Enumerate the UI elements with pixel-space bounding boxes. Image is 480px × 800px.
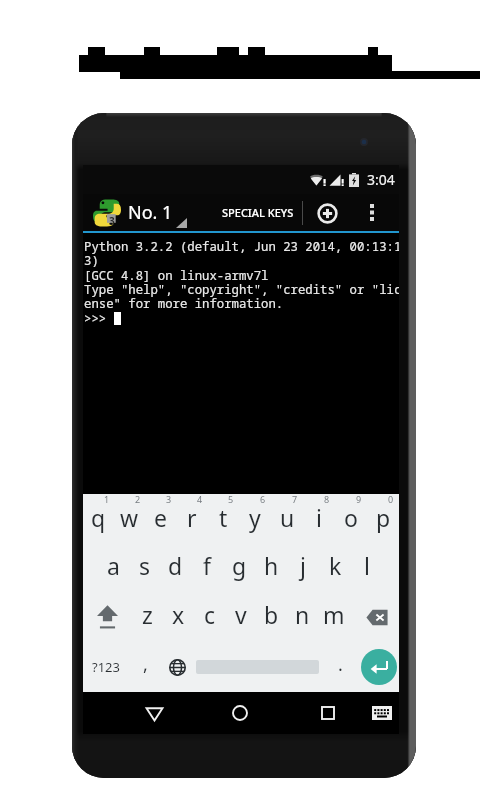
- button[interactable]: 1: [83, 494, 114, 543]
- staticText: h: [264, 550, 279, 581]
- staticText: l: [364, 550, 370, 581]
- staticText: r: [187, 502, 197, 533]
- staticText: 5: [228, 493, 234, 505]
- button[interactable]: Home: [217, 692, 263, 734]
- button[interactable]: 8: [303, 494, 335, 543]
- button[interactable]: s: [129, 543, 160, 592]
- button[interactable]: 9: [335, 494, 367, 543]
- button[interactable]: n: [287, 592, 318, 642]
- button[interactable]: 2: [114, 494, 145, 543]
- staticText: w: [120, 502, 139, 533]
- button[interactable]: 6: [239, 494, 271, 543]
- staticText: t: [219, 502, 228, 533]
- button[interactable]: Back: [131, 692, 177, 734]
- staticText: [GCC 4.8] on linux-armv7l: [84, 267, 269, 284]
- staticText: p: [376, 502, 391, 533]
- button[interactable]: 3: [83, 194, 189, 231]
- button[interactable]: 4: [176, 494, 207, 543]
- staticText: i: [316, 502, 322, 533]
- button[interactable]: c: [194, 592, 225, 642]
- staticText: 9: [356, 493, 362, 505]
- button[interactable]: Enter: [358, 642, 399, 692]
- button[interactable]: f: [191, 543, 223, 592]
- button[interactable]: Recents: [305, 692, 351, 734]
- staticText: 8: [324, 493, 330, 505]
- button[interactable]: ?123: [83, 642, 129, 692]
- staticText: n: [295, 599, 310, 630]
- staticText: u: [280, 502, 295, 533]
- staticText: Python 3.2.2 (default, Jun 23 2014, 00:1…: [84, 238, 399, 255]
- staticText: a: [107, 550, 120, 581]
- button[interactable]: z: [132, 592, 163, 642]
- staticText: b: [264, 599, 279, 630]
- staticText: 3): [84, 252, 99, 269]
- button[interactable]: x: [163, 592, 194, 642]
- staticText: o: [344, 502, 358, 533]
- staticText: d: [168, 550, 183, 581]
- staticText: y: [249, 502, 261, 533]
- button[interactable]: j: [287, 543, 319, 592]
- button[interactable]: .: [322, 642, 358, 692]
- staticText: ense" for more information.: [84, 295, 284, 312]
- staticText: 3: [109, 214, 115, 228]
- button[interactable]: 7: [271, 494, 303, 543]
- button[interactable]: k: [319, 543, 351, 592]
- button[interactable]: More options: [359, 194, 385, 231]
- staticText: z: [142, 599, 153, 630]
- staticText: SPECIAL KEYS: [222, 205, 294, 220]
- button[interactable]: 0: [367, 494, 399, 543]
- button[interactable]: g: [223, 543, 255, 592]
- staticText: ?123: [92, 658, 120, 676]
- staticText: m: [323, 599, 345, 630]
- button[interactable]: h: [255, 543, 287, 592]
- button[interactable]: SPECIAL KEYS: [219, 194, 297, 231]
- staticText: >>>: [84, 310, 114, 327]
- button[interactable]: a: [98, 543, 129, 592]
- staticText: g: [232, 550, 247, 581]
- staticText: 4: [197, 493, 203, 505]
- staticText: ,: [143, 652, 148, 677]
- staticText: 7: [292, 493, 298, 505]
- staticText: No. 1: [128, 200, 173, 225]
- staticText: 2: [135, 493, 141, 505]
- staticText: 1: [104, 493, 110, 505]
- staticText: 3:04: [367, 170, 395, 189]
- staticText: f: [203, 550, 211, 581]
- staticText: .: [338, 652, 343, 677]
- button[interactable]: d: [160, 543, 191, 592]
- staticText: q: [91, 502, 106, 533]
- button[interactable]: l: [351, 543, 383, 592]
- staticText: Type "help", "copyright", "credits" or "…: [84, 281, 399, 298]
- staticText: x: [172, 599, 185, 630]
- button[interactable]: Change language: [162, 642, 193, 692]
- button[interactable]: Keyboard: [359, 692, 405, 734]
- button[interactable]: Space: [193, 642, 322, 692]
- button[interactable]: b: [256, 592, 287, 642]
- button[interactable]: 3: [145, 494, 176, 543]
- staticText: e: [154, 502, 167, 533]
- button[interactable]: Shift: [83, 592, 132, 642]
- staticText: j: [300, 550, 306, 581]
- staticText: v: [235, 599, 247, 630]
- staticText: k: [329, 550, 342, 581]
- button[interactable]: 5: [207, 494, 239, 543]
- button[interactable]: Backspace: [349, 592, 399, 642]
- button[interactable]: m: [318, 592, 349, 642]
- staticText: 6: [260, 493, 266, 505]
- staticText: s: [139, 550, 151, 581]
- button[interactable]: Python 3.2.2 (default, Jun 23 2014, 00:1…: [83, 233, 399, 494]
- button[interactable]: ,: [129, 642, 162, 692]
- staticText: c: [204, 599, 216, 630]
- button[interactable]: Add: [311, 197, 343, 229]
- staticText: 0: [388, 493, 394, 505]
- button[interactable]: v: [225, 592, 256, 642]
- staticText: 3: [166, 493, 172, 505]
